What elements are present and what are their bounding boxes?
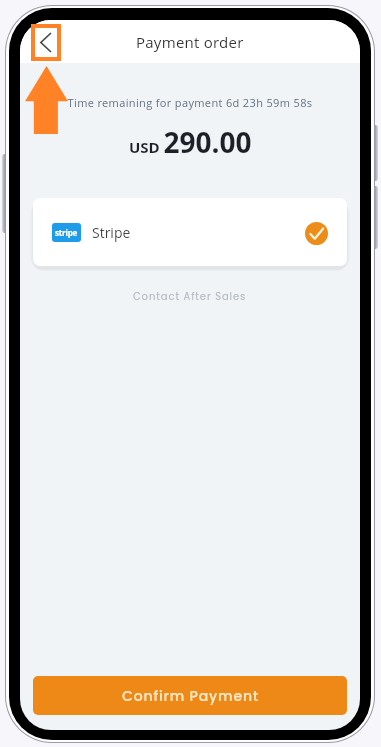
- staticText: Time remaining for payment 6d 23h 59m 58…: [20, 95, 360, 110]
- staticText: Stripe: [92, 223, 131, 242]
- staticText: stripe: [55, 227, 78, 238]
- staticText: Confirm Payment: [122, 686, 259, 706]
- staticText: Payment order: [136, 32, 244, 52]
- staticText: USD 290.00: [129, 123, 252, 155]
- staticText: Contact After Sales: [133, 289, 247, 303]
- button[interactable]: Confirm Payment: [33, 676, 347, 715]
- button[interactable]: Back: [30, 20, 60, 63]
- button[interactable]: stripe: [33, 198, 347, 266]
- button[interactable]: Contact After Sales: [125, 284, 255, 308]
